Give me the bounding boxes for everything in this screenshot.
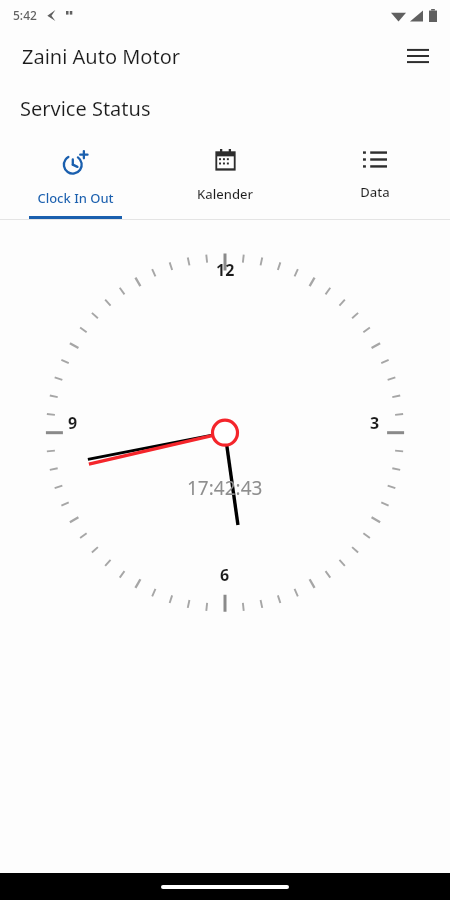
button[interactable]: Menu	[396, 34, 440, 78]
staticText: Kalender	[197, 185, 253, 203]
staticText: 5:42	[13, 7, 37, 23]
staticText: Clock In Out	[37, 189, 114, 207]
staticText: Zaini Auto Motor	[22, 43, 181, 70]
staticText: 17:42:43	[187, 475, 263, 501]
button[interactable]: Kalender	[150, 134, 300, 203]
button[interactable]: Data	[300, 134, 450, 201]
staticText: 6	[220, 564, 230, 586]
staticText: Service Status	[20, 95, 151, 122]
staticText: 9	[68, 412, 78, 434]
staticText: 3	[370, 412, 380, 434]
staticText: 12	[216, 259, 235, 281]
staticText: Data	[360, 183, 390, 201]
button[interactable]: Clock In Out	[0, 134, 150, 207]
